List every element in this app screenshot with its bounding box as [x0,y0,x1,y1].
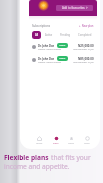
staticText: More [84,142,90,145]
button[interactable]: Active [43,31,55,39]
button[interactable]: Alerts [66,136,76,145]
button[interactable]: Pending [58,31,73,39]
button[interactable]: All [32,31,41,39]
staticText: N85,000.00 [78,57,94,61]
staticText: Completed [78,33,92,37]
staticText: Alerts [68,142,74,145]
button[interactable]: Add to favourites > [56,5,93,11]
staticText: Home [36,142,43,145]
button[interactable]: Plans [51,136,61,145]
staticText: Weekly Health Checks [38,48,62,51]
staticText: income and appetite. [4,162,70,171]
staticText: Dr. John Doe [38,57,55,61]
button[interactable]: More [82,136,92,145]
staticText: Next payment 12 Jun [73,61,94,64]
staticText: All [35,33,38,37]
staticText: Active [59,57,66,60]
staticText: Plans [53,142,59,145]
staticText: Add to favourites > [62,6,88,10]
staticText: that fits your [51,153,91,162]
button[interactable]: Dr. John Doe [32,55,94,65]
staticText: Active [45,33,53,37]
staticText: N25,000.00 [78,44,94,48]
staticText: Dr. John Doe [38,44,55,48]
staticText: Next payment 12 Jun [73,48,94,51]
staticText: Flexible plans [4,153,51,162]
staticText: Active [59,44,66,47]
button[interactable]: Dr. John Doe [32,42,94,52]
staticText: Pending [60,33,71,37]
staticText: Subscriptions [32,24,51,28]
staticText: + New plan [79,24,94,28]
button[interactable]: Home [34,136,45,145]
staticText: Weekly Health Checks [38,61,62,64]
button[interactable]: Completed [76,31,94,39]
button[interactable]: App logo [40,2,47,9]
button[interactable]: + New plan [79,24,94,28]
